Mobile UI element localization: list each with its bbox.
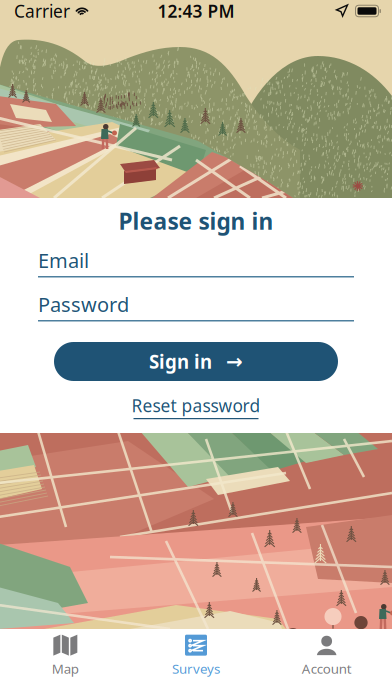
staticText: 12:43 PM xyxy=(157,0,234,22)
staticText: Map xyxy=(52,660,79,677)
staticText: Sign in xyxy=(149,349,212,374)
staticText: Carrier xyxy=(14,0,70,22)
button[interactable]: Reset password xyxy=(0,394,392,419)
staticText: Password xyxy=(38,291,129,318)
button[interactable]: Surveys xyxy=(131,631,261,680)
staticText: Surveys xyxy=(172,660,220,677)
staticText: Email xyxy=(38,247,89,274)
staticText: Account xyxy=(302,660,352,677)
button[interactable]: Sign in xyxy=(54,342,338,381)
button[interactable]: Map xyxy=(0,631,131,680)
staticText: Reset password xyxy=(131,394,260,417)
staticText: → xyxy=(212,350,243,373)
staticText: Please sign in xyxy=(118,206,273,236)
button[interactable]: Account xyxy=(261,631,392,680)
